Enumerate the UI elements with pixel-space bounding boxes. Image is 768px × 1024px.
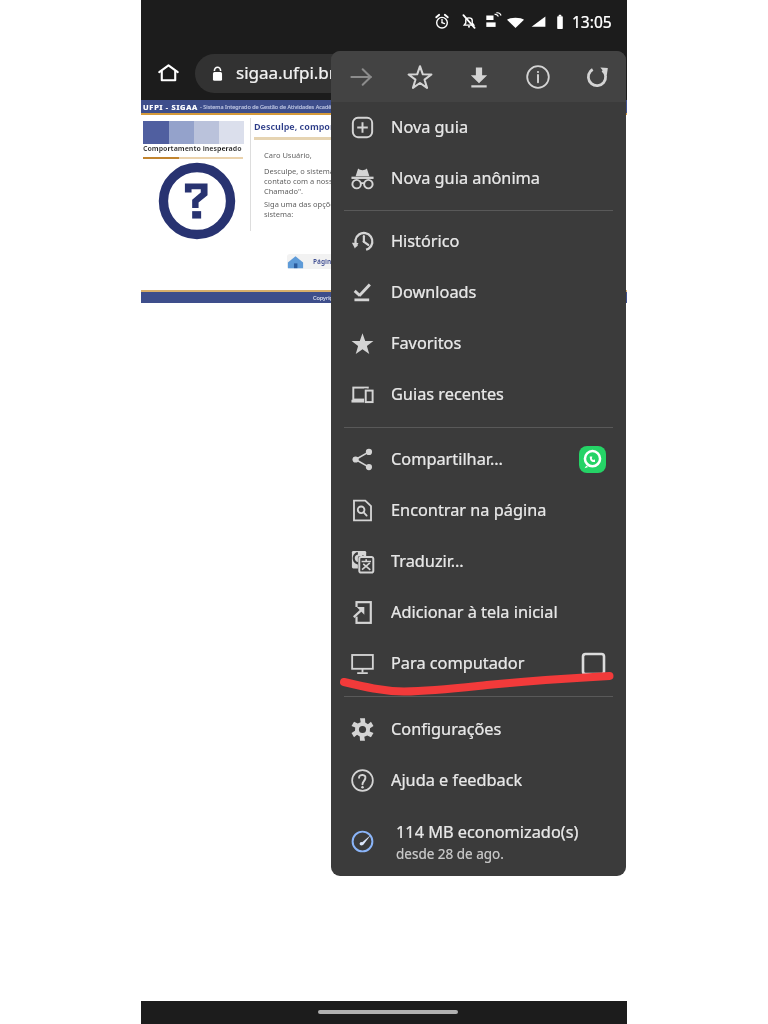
staticText: Guias recentes (391, 383, 504, 405)
button[interactable]: Downloads (331, 267, 626, 318)
button[interactable]: Guias recentes (331, 369, 626, 420)
staticText: Favoritos (391, 332, 462, 354)
staticText: Para computador (391, 652, 525, 674)
staticText: Desculpe, comportamento inesperado (254, 120, 426, 132)
button[interactable]: Adicionar à tela inicial (331, 587, 626, 638)
staticText: UFPI - SIGAA (143, 102, 198, 112)
staticText: Página inicial (313, 257, 357, 266)
button[interactable]: 114 MB economizado(s) (331, 806, 626, 876)
staticText: Traduzir… (391, 550, 464, 572)
button[interactable]: Para computador (331, 638, 626, 689)
button[interactable]: Bookmark (390, 51, 449, 102)
button[interactable]: Home (143, 48, 193, 98)
staticText: sigaa.ufpi.br (236, 61, 336, 84)
staticText: Compartilhar… (391, 448, 503, 470)
staticText: Ajuda e feedback (391, 769, 523, 791)
staticText: Nova guia anônima (391, 167, 540, 189)
button[interactable]: Favoritos (331, 318, 626, 369)
staticText: Encontrar na página (391, 499, 547, 521)
staticText: Downloads (391, 281, 477, 303)
staticText: Configurações (391, 718, 502, 740)
staticText: Desculpe, o sistema apresentou um compor… (264, 166, 450, 196)
button[interactable]: sigaa.ufpi.br (195, 54, 525, 93)
staticText: 13:05 (572, 11, 612, 32)
staticText: Siga uma das opções abaixo para continua… (264, 199, 452, 219)
button[interactable]: Nova guia anônima (331, 153, 626, 204)
staticText: desde 28 de ago. (396, 845, 504, 863)
staticText: Adicionar à tela inicial (391, 601, 558, 623)
staticText: Histórico (391, 230, 460, 252)
staticText: 114 MB economizado(s) (396, 821, 579, 843)
button[interactable]: Página inicial (287, 254, 382, 269)
button[interactable]: Histórico (331, 216, 626, 267)
button[interactable]: Encontrar na página (331, 485, 626, 536)
staticText: Copyright 2006 - Superintendência de Tec… (313, 294, 479, 301)
button[interactable]: Compartilhar… (331, 434, 626, 485)
button[interactable]: Ajuda e feedback (331, 755, 626, 806)
button[interactable]: Forward (331, 51, 390, 102)
staticText: - Sistema Integrado de Gestão de Ativida… (200, 103, 347, 110)
staticText: Nova guia (391, 116, 469, 138)
button[interactable]: Download (449, 51, 508, 102)
staticText: Comportamento inesperado (143, 144, 242, 154)
button[interactable]: Traduzir… (331, 536, 626, 587)
button[interactable]: Reload (567, 51, 626, 102)
button[interactable]: Configurações (331, 704, 626, 755)
button[interactable]: Page info (508, 51, 567, 102)
button[interactable]: Home gesture (318, 1010, 458, 1014)
button[interactable]: Nova guia (331, 102, 626, 153)
staticText: Caro Usuário, (264, 150, 312, 160)
